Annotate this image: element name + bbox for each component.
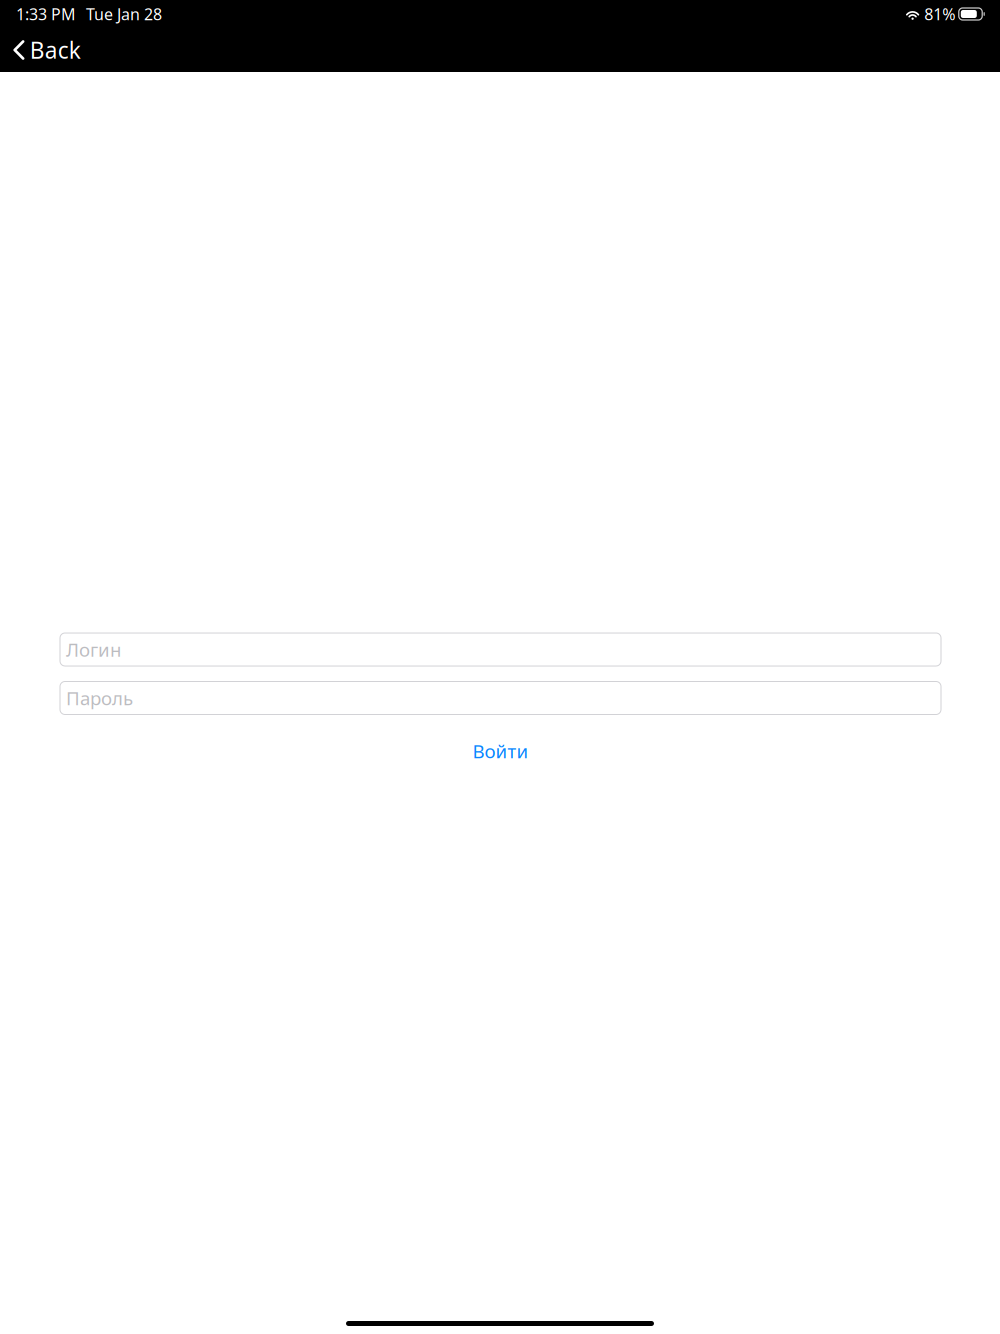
staticText: 1:33 PM bbox=[16, 3, 76, 25]
staticText: Пароль bbox=[66, 686, 133, 710]
button[interactable]: Back bbox=[0, 28, 94, 72]
staticText: Логин bbox=[66, 637, 121, 662]
button[interactable]: Пароль bbox=[60, 681, 941, 714]
button[interactable]: Логин bbox=[60, 633, 941, 666]
button[interactable]: Войти bbox=[60, 739, 941, 763]
staticText: Back bbox=[30, 35, 81, 65]
staticText: Tue Jan 28 bbox=[86, 3, 162, 25]
staticText: Войти bbox=[472, 739, 528, 763]
staticText: 81% bbox=[924, 3, 955, 25]
